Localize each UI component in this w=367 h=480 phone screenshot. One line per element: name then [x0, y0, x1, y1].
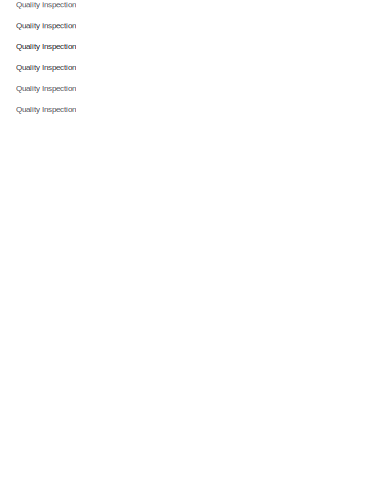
staticText: Quality Inspection	[16, 42, 76, 51]
staticText: Quality Inspection	[16, 84, 76, 93]
staticText: Quality Inspection	[16, 63, 76, 72]
staticText: Quality Inspection	[16, 105, 76, 114]
staticText: Quality Inspection	[16, 0, 76, 9]
staticText: Quality Inspection	[16, 21, 76, 30]
